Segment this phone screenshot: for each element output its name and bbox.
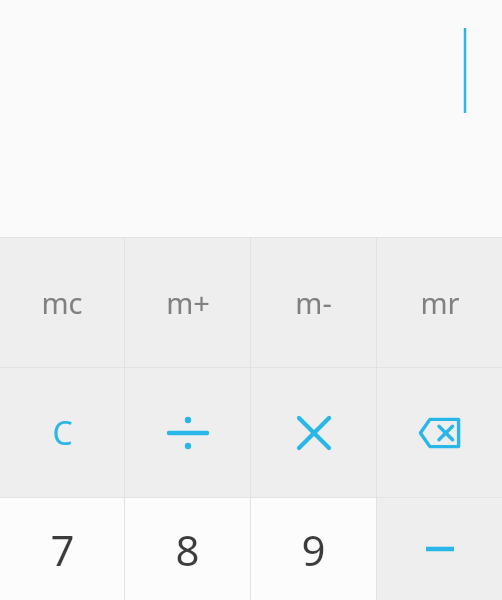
button[interactable]: Multiply: [251, 368, 376, 497]
button[interactable]: 8: [125, 498, 250, 600]
button[interactable]: Backspace: [377, 368, 502, 497]
button[interactable]: C: [0, 368, 124, 497]
staticText: m-: [295, 283, 332, 322]
button[interactable]: 7: [0, 498, 124, 600]
button[interactable]: Minus: [377, 498, 502, 600]
staticText: 8: [175, 521, 200, 578]
staticText: mc: [41, 283, 83, 322]
staticText: mr: [420, 283, 460, 322]
button[interactable]: Divide: [125, 368, 250, 497]
staticText: m+: [166, 283, 210, 322]
button[interactable]: m+: [125, 238, 250, 367]
button[interactable]: mc: [0, 238, 124, 367]
button[interactable]: 9: [251, 498, 376, 600]
staticText: 9: [301, 521, 326, 578]
staticText: 7: [50, 521, 75, 578]
button[interactable]: mr: [377, 238, 502, 367]
button[interactable]: m-: [251, 238, 376, 367]
staticText: C: [52, 411, 73, 455]
